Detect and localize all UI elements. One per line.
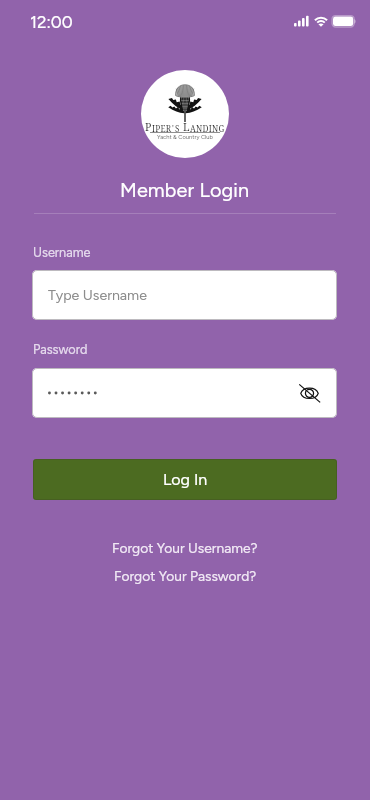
staticText: Member Login bbox=[120, 178, 250, 202]
staticText: S bbox=[175, 123, 183, 134]
button[interactable]: Show password bbox=[290, 374, 328, 412]
button[interactable]: Forgot Your Password? bbox=[110, 567, 261, 586]
button[interactable]: Show password bbox=[32, 368, 337, 418]
staticText: IPER bbox=[152, 123, 172, 134]
staticText: Type Username bbox=[48, 287, 147, 304]
staticText: Log In bbox=[163, 470, 208, 489]
staticText: Password bbox=[33, 342, 88, 357]
staticText: P bbox=[145, 120, 152, 134]
staticText: L bbox=[183, 120, 190, 134]
staticText: Username bbox=[33, 245, 91, 260]
staticText: ' bbox=[172, 123, 175, 134]
staticText: ANDING bbox=[190, 123, 225, 134]
button[interactable]: Log In bbox=[33, 459, 337, 500]
button[interactable]: Type Username bbox=[32, 270, 337, 320]
button[interactable]: Forgot Your Username? bbox=[108, 539, 262, 558]
staticText: 12:00 bbox=[30, 12, 73, 32]
staticText: Yacht & Country Club bbox=[157, 133, 213, 140]
